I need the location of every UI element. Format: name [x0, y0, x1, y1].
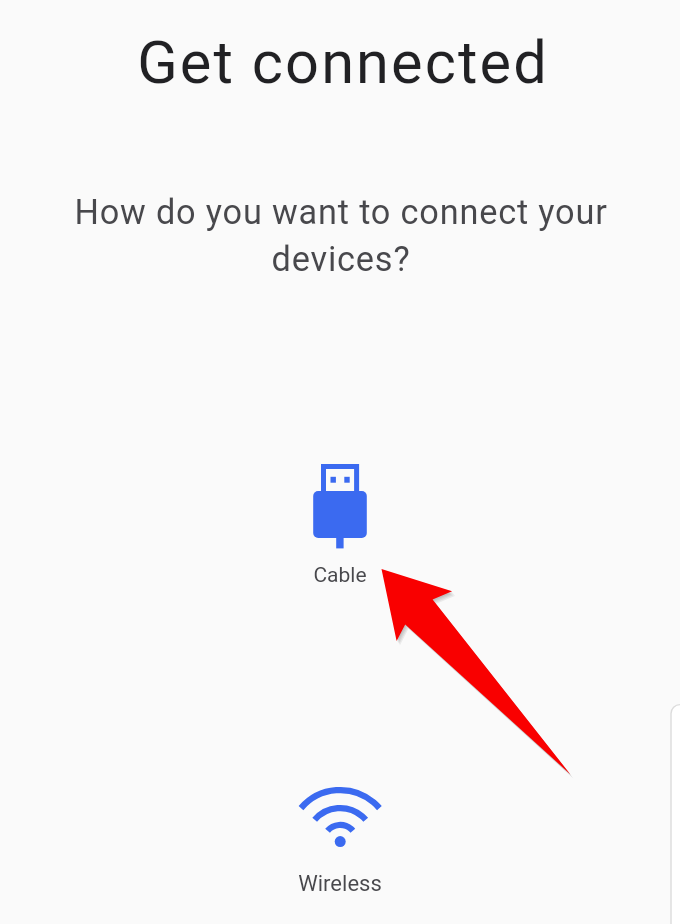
staticText: Get connected: [3, 28, 680, 98]
staticText: Wireless: [265, 871, 415, 897]
staticText: Cable: [265, 563, 415, 588]
button[interactable]: Connect wirelessly: [265, 780, 415, 905]
staticText: How do you want to connect your devices?: [51, 192, 631, 280]
button[interactable]: Connect with cable: [265, 455, 415, 590]
